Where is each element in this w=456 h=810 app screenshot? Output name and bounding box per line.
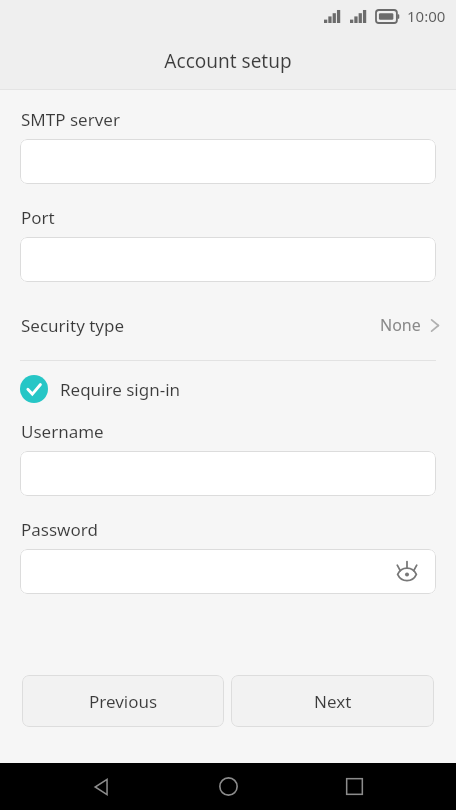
button[interactable]: Show password (20, 549, 436, 594)
staticText: None (380, 314, 421, 336)
button[interactable]: Previous (22, 675, 224, 727)
staticText: Password (21, 518, 98, 541)
button[interactable]: Next (231, 675, 434, 727)
button[interactable]: Recent apps (330, 763, 378, 810)
button[interactable] (20, 139, 436, 184)
staticText: Require sign-in (60, 378, 181, 401)
staticText: Port (21, 206, 55, 229)
button[interactable] (20, 237, 436, 282)
button[interactable]: Back (78, 763, 126, 810)
button[interactable]: Home (204, 763, 252, 810)
staticText: 10:00 (407, 6, 446, 26)
button[interactable]: Require sign-in (0, 372, 456, 406)
staticText: Account setup (164, 48, 292, 74)
staticText: Previous (89, 690, 158, 713)
staticText: Next (314, 690, 352, 713)
staticText: SMTP server (21, 108, 120, 131)
button[interactable]: Security type (0, 310, 456, 340)
button[interactable] (20, 451, 436, 496)
staticText: Username (21, 420, 104, 443)
button[interactable]: Show password (390, 555, 424, 589)
staticText: Security type (21, 314, 125, 337)
